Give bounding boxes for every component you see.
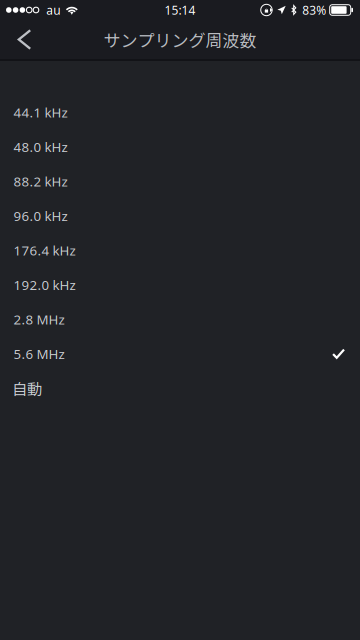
staticText: 176.4 kHz <box>13 241 75 259</box>
staticText: au <box>46 2 60 18</box>
staticText: 15:14 <box>164 2 195 18</box>
staticText: 88.2 kHz <box>13 172 67 190</box>
staticText: 192.0 kHz <box>13 276 75 294</box>
button[interactable]: 44.1 kHz <box>0 95 360 129</box>
staticText: サンプリング周波数 <box>103 27 256 52</box>
button[interactable]: 自動 <box>0 371 360 405</box>
button[interactable]: 5.6 MHz <box>0 336 360 371</box>
button[interactable]: 88.2 kHz <box>0 164 360 198</box>
button[interactable]: 176.4 kHz <box>0 233 360 267</box>
button[interactable]: 2.8 MHz <box>0 302 360 336</box>
button[interactable]: Back <box>0 20 48 59</box>
staticText: 5.6 MHz <box>13 345 64 363</box>
staticText: 96.0 kHz <box>13 207 67 225</box>
button[interactable]: 48.0 kHz <box>0 129 360 164</box>
staticText: 83% <box>302 2 326 18</box>
staticText: 48.0 kHz <box>13 138 67 156</box>
button[interactable]: 96.0 kHz <box>0 198 360 233</box>
button[interactable]: 192.0 kHz <box>0 267 360 302</box>
staticText: 2.8 MHz <box>13 310 64 328</box>
staticText: 自動 <box>12 377 42 399</box>
staticText: 44.1 kHz <box>13 103 67 121</box>
